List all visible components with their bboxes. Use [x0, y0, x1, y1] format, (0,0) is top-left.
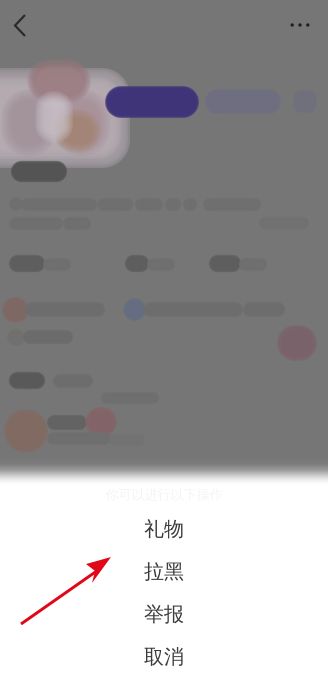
staticText: 拉黑: [144, 559, 184, 584]
staticText: 礼物: [144, 517, 184, 541]
staticText: 你可以进行以下操作: [105, 487, 222, 503]
button[interactable]: 举报: [0, 593, 328, 636]
staticText: 取消: [144, 645, 184, 669]
button[interactable]: More: [0, 0, 44, 44]
button[interactable]: 礼物: [0, 508, 328, 550]
button[interactable]: 拉黑: [0, 550, 328, 593]
staticText: 举报: [144, 602, 184, 627]
button[interactable]: 取消: [0, 636, 328, 678]
button[interactable]: Back: [0, 0, 44, 50]
